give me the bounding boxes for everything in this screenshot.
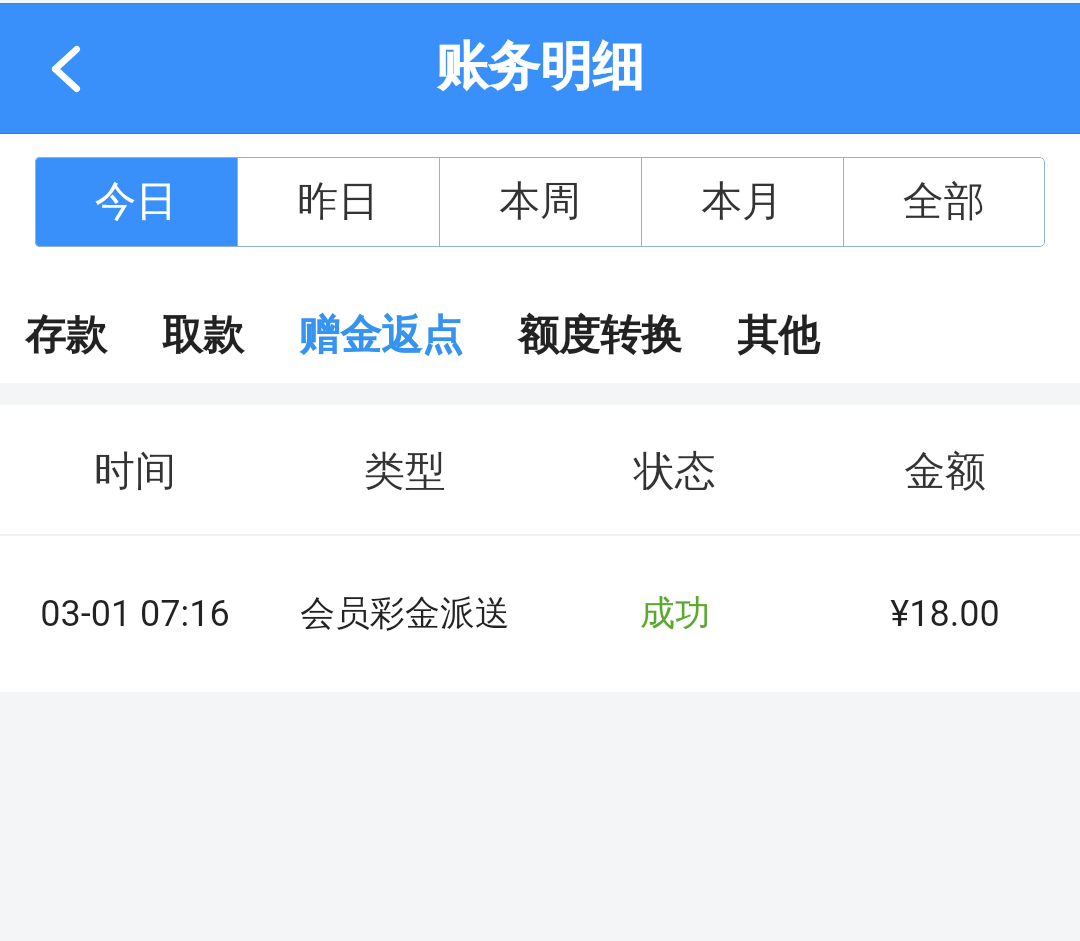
staticText: 会员彩金派送 [270,591,540,635]
staticText: 其他 [737,310,819,362]
button[interactable]: 会员彩金派送 [0,536,1080,692]
button[interactable]: 今日 [35,157,237,247]
button[interactable]: 其他 [737,291,819,381]
staticText: 存款 [25,310,107,362]
staticText: 成功 [540,591,810,635]
button[interactable]: 全部 [843,157,1045,247]
button[interactable]: 昨日 [237,157,439,247]
staticText: 金额 [810,446,1080,498]
button[interactable]: 本周 [439,157,641,247]
button[interactable]: 赠金返点 [299,291,463,381]
button[interactable]: 额度转换 [518,291,682,381]
staticText: 取款 [162,310,244,362]
staticText: 状态 [540,446,810,498]
staticText: 时间 [0,446,270,498]
staticText: 赠金返点 [299,310,463,362]
staticText: 今日 [95,176,177,228]
button[interactable]: Back [28,31,104,107]
staticText: ¥18.00 [810,593,1080,635]
staticText: 本月 [701,176,783,228]
staticText: 全部 [903,176,985,228]
staticText: 类型 [270,446,540,498]
staticText: 额度转换 [518,310,682,362]
staticText: 账务明细 [436,34,644,100]
button[interactable]: 存款 [25,291,107,381]
button[interactable]: 本月 [641,157,843,247]
staticText: 本周 [499,176,581,228]
button[interactable]: 取款 [162,291,244,381]
staticText: 昨日 [297,176,379,228]
staticText: 03-01 07:16 [0,593,270,635]
